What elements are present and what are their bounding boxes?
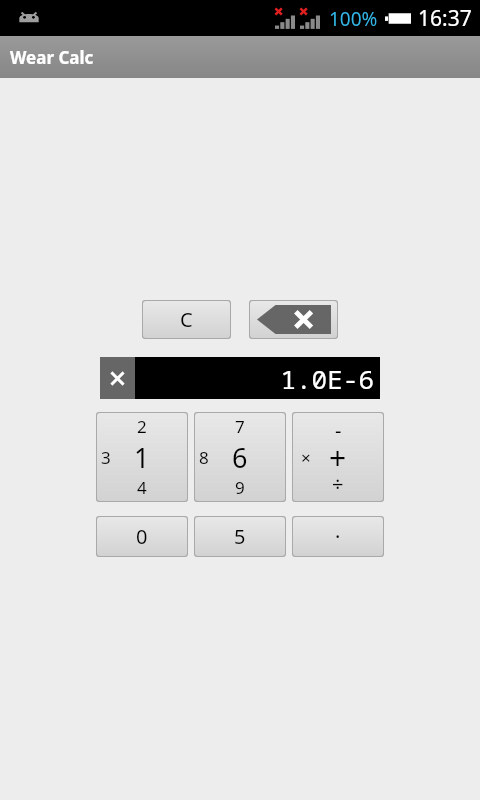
- button[interactable]: ·: [292, 516, 384, 557]
- button[interactable]: 5: [194, 516, 286, 557]
- staticText: 1: [134, 439, 150, 476]
- staticText: 4: [137, 476, 147, 499]
- staticText: +: [329, 437, 347, 478]
- staticText: 2: [137, 415, 147, 438]
- staticText: 5: [234, 523, 246, 550]
- staticText: 8: [199, 446, 209, 469]
- button[interactable]: 2: [96, 412, 188, 502]
- staticText: C: [180, 306, 193, 333]
- button[interactable]: 0: [96, 516, 188, 557]
- staticText: 6: [232, 439, 248, 476]
- staticText: 0: [136, 523, 148, 550]
- staticText: ×: [301, 446, 311, 469]
- button[interactable]: 7: [194, 412, 286, 502]
- staticText: ÷: [332, 470, 344, 497]
- staticText: 3: [101, 446, 111, 469]
- button[interactable]: Backspace: [249, 300, 338, 339]
- button[interactable]: C: [142, 300, 231, 339]
- staticText: 100%: [329, 6, 378, 32]
- staticText: Wear Calc: [10, 46, 94, 69]
- staticText: 9: [235, 476, 245, 499]
- staticText: ·: [335, 523, 341, 550]
- staticText: -: [335, 417, 342, 444]
- button[interactable]: Clear display: [100, 357, 135, 399]
- staticText: 7: [235, 415, 245, 438]
- staticText: 1.0E-6: [280, 361, 374, 396]
- staticText: 16:37: [418, 4, 472, 33]
- button[interactable]: -: [292, 412, 384, 502]
